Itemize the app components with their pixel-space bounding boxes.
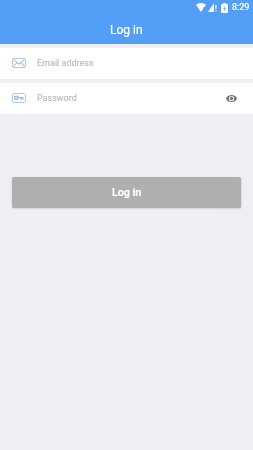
staticText: Password — [37, 93, 77, 104]
staticText: Email address — [37, 58, 94, 69]
staticText: Log in — [112, 186, 142, 199]
staticText: 8:29 — [232, 2, 250, 13]
button[interactable]: Log in — [12, 177, 241, 208]
button[interactable]: Password — [0, 83, 253, 114]
button[interactable]: Show password — [219, 87, 243, 111]
button[interactable]: Email address — [0, 48, 253, 79]
staticText: Log in — [110, 23, 143, 37]
